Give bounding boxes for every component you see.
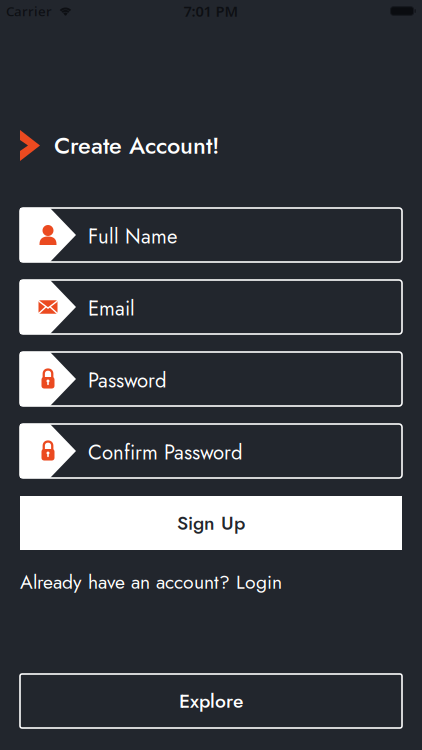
staticText: Create Account! [54, 128, 220, 162]
button[interactable]: Password [20, 352, 402, 406]
staticText: Confirm Password [88, 438, 243, 467]
staticText: Already have an account? Login [20, 568, 282, 596]
staticText: 7:01 PM [183, 1, 238, 21]
staticText: Sign Up [177, 509, 245, 537]
button[interactable]: Sign Up [20, 496, 402, 550]
staticText: Carrier [6, 2, 52, 20]
button[interactable]: Confirm Password [20, 424, 402, 478]
staticText: Password [88, 366, 167, 395]
staticText: Explore [179, 687, 243, 715]
staticText: Email [88, 294, 135, 323]
button[interactable]: Already have an account? Login [20, 568, 402, 596]
staticText: Full Name [88, 222, 177, 251]
button[interactable]: Explore [20, 674, 402, 728]
button[interactable]: Email [20, 280, 402, 334]
button[interactable]: Full Name [20, 208, 402, 262]
